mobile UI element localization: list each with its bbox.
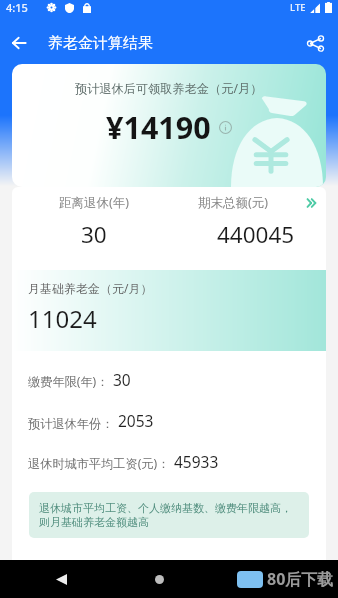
button[interactable]: Share — [300, 28, 330, 58]
staticText: 养老金计算结果 — [48, 34, 153, 53]
staticText: 30 — [113, 369, 131, 390]
button[interactable]: 预计退休年份： — [12, 410, 326, 431]
staticText: 预计退休年份： — [28, 416, 114, 431]
staticText: 月基础养老金（元/月） — [28, 280, 153, 296]
staticText: 预计退休后可领取养老金（元/月） — [75, 80, 263, 97]
staticText: 4:15 — [6, 0, 28, 15]
staticText: 11024 — [28, 302, 97, 335]
staticText: 缴费年限(年)： — [28, 373, 109, 390]
staticText: 80后下载 — [267, 568, 334, 590]
staticText: 退休城市平均工资、个人缴纳基数、缴费年限越高，则月基础养老金额越高 — [39, 501, 299, 529]
staticText: 距离退休(年) — [59, 194, 130, 211]
staticText: 440045 — [217, 219, 295, 250]
staticText: 退休时城市平均工资(元)： — [28, 455, 170, 472]
button[interactable]: 距离退休(年) — [12, 187, 176, 270]
staticText: ¥14190 — [106, 106, 211, 148]
staticText: 2053 — [118, 410, 154, 431]
button[interactable]: 退休时城市平均工资(元)： — [12, 451, 326, 472]
staticText: 30 — [81, 219, 107, 250]
staticText: LTE — [290, 1, 306, 14]
staticText: 期末总额(元) — [198, 194, 269, 211]
staticText: 45933 — [174, 451, 219, 472]
button[interactable]: 缴费年限(年)： — [12, 369, 326, 390]
button[interactable]: 期末总额(元) — [176, 187, 326, 270]
button[interactable]: Back — [4, 28, 34, 58]
